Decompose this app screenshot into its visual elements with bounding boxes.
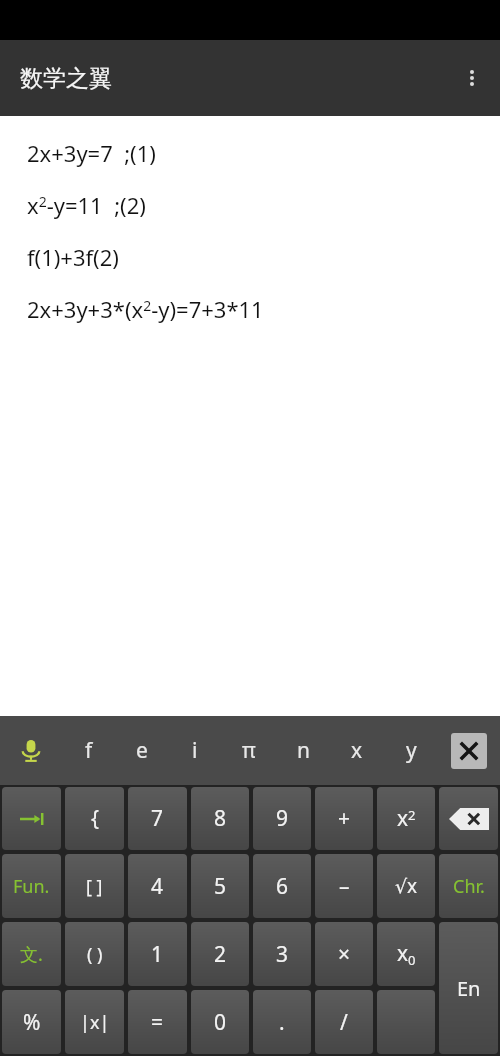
button[interactable]: |x|	[65, 990, 124, 1054]
button[interactable]: Tab	[2, 787, 61, 850]
button[interactable]: e	[115, 716, 168, 785]
staticText: +	[338, 804, 351, 833]
staticText: ×	[338, 940, 351, 969]
staticText: x	[351, 736, 363, 765]
staticText: 1	[151, 940, 164, 969]
button[interactable]: 1	[128, 922, 187, 986]
staticText: Chr.	[453, 874, 485, 899]
staticText: y	[406, 736, 417, 765]
button[interactable]: f	[62, 716, 115, 785]
button[interactable]: y	[384, 716, 438, 785]
staticText: 9	[276, 804, 289, 833]
button[interactable]: π	[222, 716, 276, 785]
button[interactable]: %	[2, 990, 61, 1054]
button[interactable]: 文.	[2, 922, 61, 986]
staticText: 文.	[20, 942, 43, 967]
button[interactable]: 3	[253, 922, 311, 986]
button[interactable]: 4	[128, 854, 187, 918]
button[interactable]: –	[315, 854, 373, 918]
staticText: n	[297, 736, 310, 765]
button[interactable]: x2	[377, 787, 435, 850]
staticText: i	[192, 736, 198, 765]
button[interactable]: =	[128, 990, 187, 1054]
button[interactable]: +	[315, 787, 373, 850]
staticText: √x	[395, 873, 418, 899]
button[interactable]: 8	[191, 787, 249, 850]
staticText: –	[339, 872, 350, 901]
staticText: 2	[214, 940, 227, 969]
staticText: /	[340, 1008, 348, 1037]
button[interactable]: ( )	[65, 922, 124, 986]
staticText: ( )	[87, 942, 103, 967]
button[interactable]: 6	[253, 854, 311, 918]
staticText: 7	[151, 804, 164, 833]
button[interactable]: [ ]	[65, 854, 124, 918]
staticText: %	[23, 1008, 41, 1037]
staticText: 数学之翼	[20, 64, 112, 93]
button[interactable]: 9	[253, 787, 311, 850]
button[interactable]: {	[65, 787, 124, 850]
button[interactable]: 5	[191, 854, 249, 918]
button[interactable]: Chr.	[439, 854, 498, 918]
staticText: 2x+3y+3*(x2-y)=7+3*11	[27, 294, 264, 324]
staticText: |x|	[80, 1010, 110, 1035]
staticText: 4	[151, 872, 164, 901]
button[interactable]: x	[330, 716, 384, 785]
button[interactable]: Voice input	[0, 716, 62, 785]
staticText: π	[242, 736, 256, 765]
button[interactable]: √x	[377, 854, 435, 918]
staticText: f(1)+3f(2)	[27, 242, 119, 272]
button[interactable]: i	[168, 716, 222, 785]
staticText: f	[85, 736, 93, 765]
staticText: .	[279, 1008, 285, 1037]
staticText: 2x+3y=7 ;(1)	[27, 138, 156, 168]
button[interactable]: n	[276, 716, 330, 785]
button[interactable]: More options	[444, 50, 500, 106]
staticText: 0	[214, 1008, 227, 1037]
button[interactable]: x0	[377, 922, 435, 986]
button[interactable]	[377, 990, 435, 1054]
button[interactable]: ×	[315, 922, 373, 986]
button[interactable]: .	[253, 990, 311, 1054]
staticText: 6	[276, 872, 289, 901]
button[interactable]: /	[315, 990, 373, 1054]
button[interactable]: Backspace	[439, 787, 498, 850]
staticText: En	[457, 975, 481, 1002]
staticText: e	[136, 736, 148, 765]
button[interactable]: 7	[128, 787, 187, 850]
button[interactable]: 2	[191, 922, 249, 986]
staticText: Fun.	[13, 874, 50, 899]
staticText: x2-y=11 ;(2)	[27, 190, 146, 220]
staticText: x2	[397, 804, 416, 833]
button[interactable]: Enter	[439, 922, 498, 1054]
staticText: =	[151, 1008, 164, 1037]
staticText: 5	[214, 872, 227, 901]
staticText: [ ]	[86, 874, 103, 899]
button[interactable]: 0	[191, 990, 249, 1054]
staticText: {	[91, 804, 99, 833]
button[interactable]: Close keyboard	[438, 716, 500, 785]
staticText: 8	[214, 804, 227, 833]
staticText: x0	[397, 939, 416, 969]
button[interactable]: Fun.	[2, 854, 61, 918]
staticText: 3	[276, 940, 289, 969]
